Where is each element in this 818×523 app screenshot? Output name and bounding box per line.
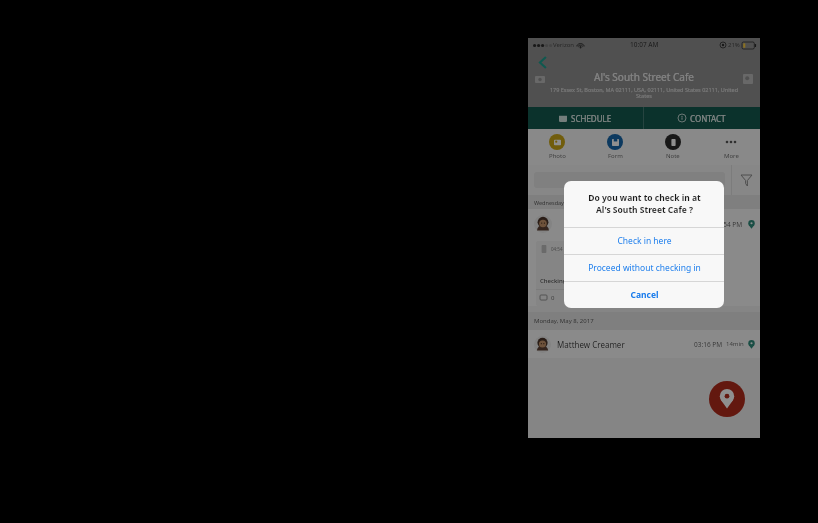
staticText: 04:54 PM xyxy=(714,220,743,229)
staticText: Do you want to check in at Al's South St… xyxy=(588,192,701,216)
staticText: Proceed without checking in xyxy=(588,262,701,274)
staticText: Photo xyxy=(549,152,566,160)
staticText: Check in here xyxy=(617,235,672,247)
staticText: 04:54 PM xyxy=(551,246,571,252)
staticText: Wednesday, May 10, 2017 xyxy=(534,199,601,206)
staticText: Checking in xyxy=(540,277,574,285)
button[interactable]: Back xyxy=(534,53,552,71)
staticText: SCHEDULE xyxy=(571,113,612,124)
staticText: 0 xyxy=(551,294,555,302)
staticText: Cancel xyxy=(630,289,659,301)
staticText: Al's South Street Cafe xyxy=(594,70,694,84)
button[interactable]: Filter xyxy=(732,165,760,195)
button[interactable]: Photo xyxy=(528,129,586,165)
staticText: 10:07 AM xyxy=(630,40,659,49)
button[interactable]: Matthew Creamer xyxy=(528,330,760,358)
staticText: Monday, May 8, 2017 xyxy=(534,317,594,325)
staticText: Note xyxy=(666,152,680,160)
staticText: 14min xyxy=(726,340,744,348)
staticText: More xyxy=(724,152,739,160)
staticText: 21% xyxy=(728,41,740,49)
button[interactable]: 04:54 PM xyxy=(528,209,760,239)
button[interactable]: Form xyxy=(586,129,644,165)
button[interactable]: Check in location xyxy=(709,381,745,417)
staticText: Form xyxy=(608,152,623,160)
button[interactable]: SCHEDULE xyxy=(528,107,643,129)
button[interactable]: Cancel xyxy=(564,282,724,308)
button[interactable]: Check in here xyxy=(564,228,724,254)
button[interactable]: Note xyxy=(644,129,702,165)
button[interactable]: Map xyxy=(741,72,755,86)
staticText: 03:16 PM xyxy=(694,340,723,349)
staticText: 179 Essex St, Boston, MA 02111, USA, 021… xyxy=(549,86,739,100)
staticText: Verizon xyxy=(553,41,575,49)
button[interactable]: More xyxy=(702,129,760,165)
button[interactable]: CONTACT xyxy=(644,107,760,129)
button[interactable]: Photo xyxy=(533,72,547,86)
button[interactable]: 04:54 PM xyxy=(536,241,602,306)
staticText: Matthew Creamer xyxy=(557,339,625,350)
button[interactable]: Proceed without checking in xyxy=(564,255,724,281)
staticText: CONTACT xyxy=(690,113,726,124)
button[interactable] xyxy=(534,172,725,188)
